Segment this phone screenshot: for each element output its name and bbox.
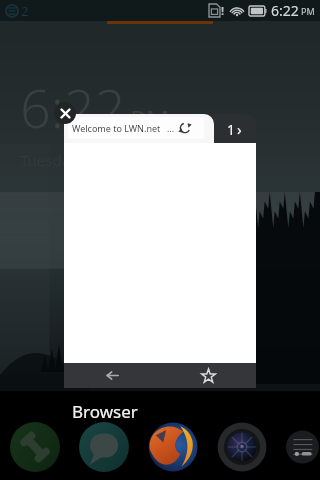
button[interactable]: Welcome to LWN.net [L <box>68 117 204 139</box>
button[interactable]: Close tab <box>54 102 76 124</box>
button[interactable]: Camera <box>216 421 268 473</box>
staticText: 6:22 <box>20 70 126 144</box>
button[interactable]: Phone <box>9 421 61 473</box>
button[interactable]: Bookmark <box>160 363 256 388</box>
button[interactable]: Messaging <box>78 421 130 473</box>
button[interactable]: Tabs, 1 open <box>186 114 256 143</box>
staticText: 2 <box>21 2 29 20</box>
staticText: ! <box>221 3 225 18</box>
staticText: Browser <box>72 400 138 423</box>
staticText: 6:22 <box>271 1 299 20</box>
button[interactable]: Firefox <box>147 421 199 473</box>
button[interactable]: Notes <box>285 421 320 473</box>
staticText: … <box>167 122 175 134</box>
staticText: PM <box>130 101 170 136</box>
button[interactable]: Back <box>64 363 160 388</box>
staticText: PM <box>301 5 315 17</box>
button[interactable]: Reload <box>178 121 192 135</box>
staticText: › <box>237 119 242 139</box>
staticText: Welcome to LWN.net [L <box>72 122 167 134</box>
staticText: Tuesday, July 14 <box>20 150 132 170</box>
staticText: 1 <box>227 120 236 139</box>
